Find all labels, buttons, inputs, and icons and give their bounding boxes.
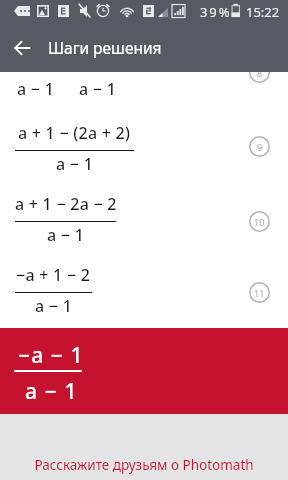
button[interactable]: Step 8 [249,62,270,83]
button[interactable]: Step 10 [249,211,270,232]
button[interactable]: −a − 1 [0,328,288,414]
staticText: 8 [257,67,263,79]
button[interactable]: Расскажите друзьям о Photomath [0,414,288,480]
staticText: 9 [257,141,263,153]
staticText: −a − 1 [18,341,84,370]
staticText: Шаги решения [48,37,162,58]
button[interactable]: Back [0,26,44,70]
button[interactable]: −a + 1 − 2 [15,266,92,318]
staticText: 10 [254,216,265,228]
staticText: a − 1 [17,78,55,100]
staticText: a + 1 − 2a − 2 [15,193,116,215]
staticText: a − 1 [47,224,85,246]
staticText: 15:22 [246,3,280,21]
staticText: 11 [254,287,265,299]
staticText: a − 1 [79,78,117,100]
button[interactable]: a + 1 − 2a − 2 [15,195,116,247]
staticText: a − 1 [56,153,94,175]
staticText: a − 1 [25,377,78,406]
staticText: 39% [200,3,232,21]
button[interactable]: Step 11 [249,282,270,303]
staticText: Расскажите друзьям о Photomath [34,456,254,474]
button[interactable]: a + 1 − (2a + 2) [15,124,134,176]
staticText: a − 1 [35,295,73,317]
staticText: −a + 1 − 2 [16,264,91,286]
staticText: a + 1 − (2a + 2) [18,122,131,144]
button[interactable]: Step 9 [249,136,270,157]
